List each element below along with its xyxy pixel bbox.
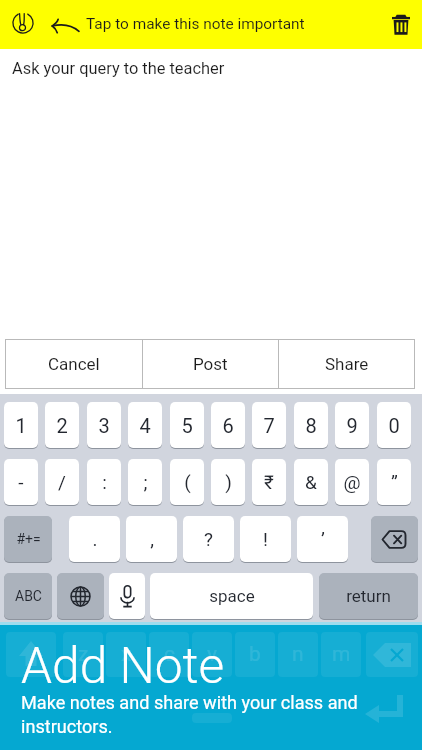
staticText: / <box>58 471 66 493</box>
staticText: ₹ <box>264 471 274 493</box>
staticText: 7 <box>263 414 275 437</box>
staticText: 4 <box>139 414 151 437</box>
button[interactable]: 5 <box>170 402 204 448</box>
button[interactable]: 7 <box>252 402 286 448</box>
button[interactable]: Backspace <box>371 516 418 562</box>
staticText: 1 <box>15 414 27 437</box>
button[interactable]: @ <box>335 459 369 505</box>
staticText: n <box>292 642 304 667</box>
staticText: , <box>150 528 154 550</box>
button[interactable]: ABC <box>4 573 52 619</box>
button[interactable]: Post <box>143 340 278 388</box>
button[interactable]: 9 <box>335 402 369 448</box>
button[interactable]: Cancel <box>6 340 142 388</box>
staticText: 6 <box>222 414 234 437</box>
staticText: Share <box>325 354 369 374</box>
button[interactable]: ) <box>211 459 245 505</box>
staticText: space <box>209 586 255 606</box>
button[interactable]: / <box>45 459 79 505</box>
button[interactable]: ( <box>170 459 204 505</box>
staticText: #+= <box>16 531 41 547</box>
button[interactable]: Back <box>44 6 84 46</box>
staticText: b <box>249 642 261 667</box>
staticText: z <box>78 642 89 667</box>
button[interactable]: & <box>294 459 328 505</box>
button[interactable]: space <box>150 573 313 619</box>
button[interactable]: ₹ <box>252 459 286 505</box>
staticText: ” <box>391 471 398 493</box>
button[interactable]: . <box>69 516 120 562</box>
button[interactable]: 1 <box>4 402 38 448</box>
staticText: @ <box>343 471 361 493</box>
button[interactable]: , <box>126 516 177 562</box>
staticText: ’ <box>321 528 325 550</box>
button[interactable]: 8 <box>294 402 328 448</box>
staticText: ; <box>143 471 148 493</box>
staticText: m <box>332 642 351 667</box>
staticText: : <box>102 471 107 493</box>
staticText: 0 <box>388 414 400 437</box>
button[interactable]: Voice input <box>109 573 145 619</box>
staticText: return <box>346 586 391 606</box>
button[interactable]: 3 <box>87 402 121 448</box>
staticText: Post <box>193 354 228 374</box>
staticText: - <box>18 471 24 493</box>
staticText: Tap to make this note important <box>86 15 305 33</box>
button[interactable]: Mark important <box>3 3 43 43</box>
button[interactable]: - <box>4 459 38 505</box>
button[interactable]: 0 <box>377 402 411 448</box>
staticText: . <box>92 528 98 550</box>
staticText: 8 <box>305 414 317 437</box>
staticText: ! <box>263 528 268 550</box>
button[interactable]: Share <box>279 340 414 388</box>
staticText: Add Note <box>21 637 225 695</box>
staticText: Make notes and share with your class and… <box>21 692 373 737</box>
button[interactable]: Delete <box>381 4 421 44</box>
button[interactable]: ; <box>128 459 162 505</box>
staticText: ( <box>184 471 191 493</box>
button[interactable]: return <box>319 573 418 619</box>
staticText: ) <box>225 471 232 493</box>
button[interactable]: 2 <box>45 402 79 448</box>
button[interactable]: ’ <box>297 516 348 562</box>
staticText: x <box>121 642 132 667</box>
button[interactable]: #+= <box>4 516 52 562</box>
staticText: & <box>305 471 317 493</box>
staticText: ABC <box>15 588 42 604</box>
button[interactable]: ? <box>183 516 234 562</box>
staticText: 5 <box>181 414 193 437</box>
staticText: c <box>164 642 175 667</box>
button[interactable]: : <box>87 459 121 505</box>
staticText: 9 <box>346 414 358 437</box>
button[interactable]: ” <box>377 459 411 505</box>
button[interactable]: Change keyboard language <box>57 573 104 619</box>
staticText: Cancel <box>48 354 100 374</box>
button[interactable]: 4 <box>128 402 162 448</box>
button[interactable]: ! <box>240 516 291 562</box>
staticText: 2 <box>56 414 68 437</box>
staticText: v <box>207 642 218 667</box>
staticText: ? <box>204 528 213 550</box>
staticText: 3 <box>98 414 110 437</box>
button[interactable]: 6 <box>211 402 245 448</box>
staticText: Ask your query to the teacher <box>12 59 225 78</box>
